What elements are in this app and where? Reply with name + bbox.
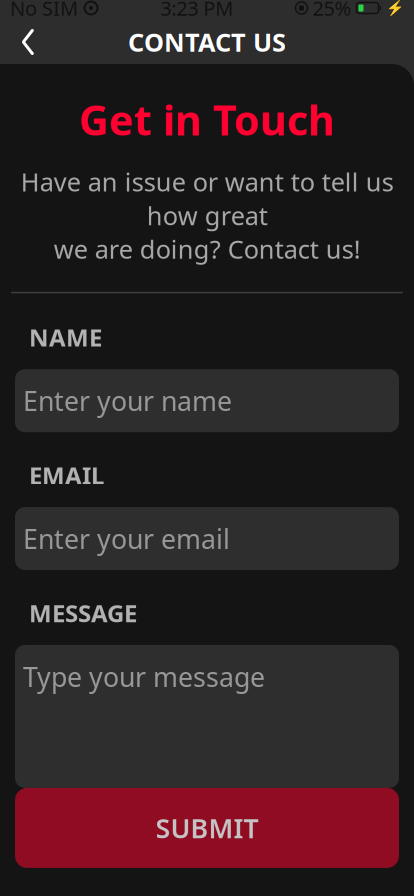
staticText: ⚡ [386,0,404,16]
button[interactable]: Enter your name [15,369,399,432]
staticText: 25% [312,0,351,21]
button[interactable]: Enter your email [15,507,399,570]
button[interactable]: SUBMIT [15,788,399,868]
staticText: Get in Touch [79,92,335,147]
staticText: EMAIL [29,459,104,491]
staticText: NAME [29,321,102,353]
staticText: 3:23 PM [160,0,233,21]
button[interactable]: Type your message [15,645,399,788]
staticText: CONTACT US [128,25,286,59]
staticText: SUBMIT [155,810,258,846]
staticText: MESSAGE [29,597,137,629]
staticText: No SIM [10,0,78,21]
staticText: Enter your email [23,521,230,556]
staticText: Type your message [23,659,265,694]
staticText: Enter your name [23,383,232,418]
staticText: Have an issue or want to tell us how gre… [20,165,393,266]
button[interactable]: Back [0,26,56,58]
